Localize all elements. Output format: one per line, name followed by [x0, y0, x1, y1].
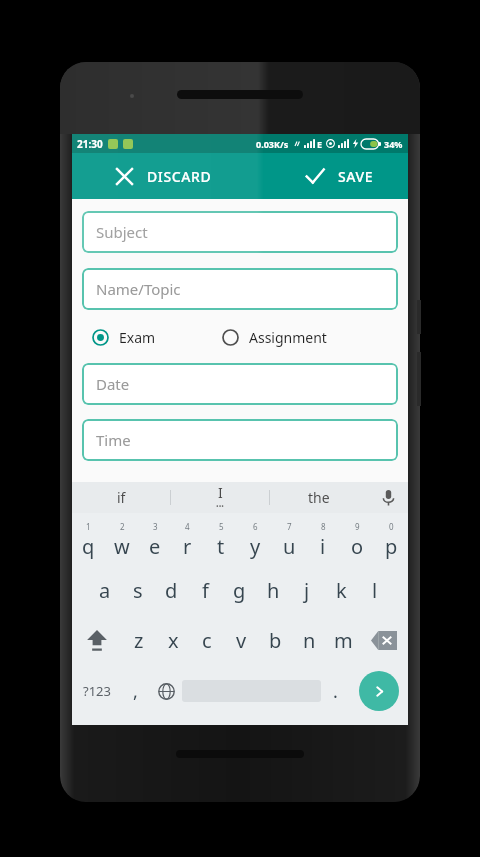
button[interactable]: Name/Topic	[82, 268, 398, 310]
staticText: y	[250, 533, 261, 560]
button[interactable]: k	[324, 565, 358, 615]
staticText: g	[233, 577, 246, 604]
staticText: r	[183, 533, 192, 560]
button[interactable]: 6	[238, 515, 272, 565]
staticText: Exam	[119, 328, 156, 347]
button[interactable]: 3	[138, 515, 171, 565]
button[interactable]: 5	[204, 515, 238, 565]
staticText: Assignment	[249, 328, 327, 347]
staticText: q	[82, 533, 95, 560]
button[interactable]: .	[321, 665, 350, 717]
button[interactable]: SAVE	[300, 159, 378, 193]
button[interactable]: the	[270, 482, 368, 513]
button[interactable]: a	[88, 565, 121, 615]
staticText: 0.03K/s	[256, 138, 289, 150]
button[interactable]: 7	[272, 515, 306, 565]
button[interactable]: Shift	[72, 615, 121, 665]
button[interactable]: g	[222, 565, 256, 615]
button[interactable]: Subject	[82, 211, 398, 253]
staticText: Subject	[96, 222, 148, 242]
button[interactable]: z	[121, 615, 156, 665]
button[interactable]: DISCARD	[110, 160, 216, 193]
staticText: .	[333, 679, 338, 704]
button[interactable]: Assignment	[220, 324, 329, 351]
button[interactable]: 0	[374, 515, 408, 565]
staticText: i	[320, 533, 326, 560]
button[interactable]: 4	[171, 515, 204, 565]
staticText: ?123	[83, 682, 111, 700]
staticText: a	[99, 577, 111, 604]
button[interactable]: j	[290, 565, 324, 615]
staticText: z	[134, 627, 144, 654]
staticText: DISCARD	[147, 167, 212, 186]
staticText: 8	[321, 521, 326, 532]
button[interactable]: I	[171, 482, 269, 513]
staticText: p	[385, 533, 398, 560]
staticText: 0	[389, 521, 394, 532]
staticText: 4	[185, 521, 190, 532]
button[interactable]: v	[224, 615, 258, 665]
staticText: Date	[96, 374, 130, 394]
staticText: the	[308, 488, 330, 507]
staticText: 2	[120, 521, 125, 532]
button[interactable]: Exam	[90, 324, 158, 351]
button[interactable]: Date	[82, 363, 398, 405]
staticText: t	[217, 533, 225, 560]
button[interactable]: 2	[105, 515, 138, 565]
staticText: E	[317, 138, 323, 150]
staticText: 7	[287, 521, 292, 532]
staticText: n	[303, 627, 316, 654]
button[interactable]: ,	[121, 665, 150, 717]
staticText: s	[133, 577, 143, 604]
button[interactable]: 8	[306, 515, 340, 565]
button[interactable]: c	[190, 615, 224, 665]
button[interactable]: if	[72, 482, 170, 513]
staticText: SAVE	[338, 167, 374, 186]
staticText: 34%	[384, 138, 403, 150]
staticText: m	[334, 627, 353, 654]
staticText: 6	[253, 521, 258, 532]
staticText: v	[236, 627, 247, 654]
staticText: o	[351, 533, 364, 560]
staticText: w	[114, 533, 130, 560]
button[interactable]: n	[292, 615, 326, 665]
button[interactable]: Change keyboard language	[150, 665, 182, 717]
staticText: 21:30	[77, 137, 103, 151]
staticText: e	[149, 533, 161, 560]
staticText: •••	[216, 502, 224, 512]
staticText: j	[304, 577, 310, 604]
button[interactable]: Next	[359, 671, 399, 711]
staticText: 5	[219, 521, 224, 532]
button[interactable]: Backspace	[360, 615, 408, 665]
staticText: f	[202, 577, 209, 604]
button[interactable]: 9	[340, 515, 374, 565]
button[interactable]	[182, 665, 321, 717]
staticText: k	[336, 577, 347, 604]
staticText: 9	[355, 521, 360, 532]
staticText: ,	[133, 679, 138, 704]
button[interactable]: Time	[82, 419, 398, 461]
button[interactable]: s	[121, 565, 154, 615]
staticText: c	[202, 627, 212, 654]
staticText: h	[267, 577, 280, 604]
button[interactable]: 1	[72, 515, 105, 565]
staticText: Name/Topic	[96, 279, 181, 299]
button[interactable]: ?123	[72, 665, 121, 717]
staticText: I	[218, 483, 223, 502]
staticText: b	[269, 627, 282, 654]
staticText: l	[372, 577, 378, 604]
staticText: 3	[153, 521, 158, 532]
button[interactable]: m	[326, 615, 360, 665]
staticText: if	[117, 488, 126, 507]
staticText: Time	[96, 430, 131, 450]
button[interactable]: h	[256, 565, 290, 615]
button[interactable]: l	[358, 565, 392, 615]
staticText: d	[165, 577, 178, 604]
button[interactable]: Voice input	[368, 482, 408, 513]
button[interactable]: b	[258, 615, 292, 665]
staticText: x	[168, 627, 179, 654]
button[interactable]: d	[154, 565, 188, 615]
staticText: 1	[86, 521, 91, 532]
button[interactable]: f	[188, 565, 222, 615]
button[interactable]: x	[156, 615, 190, 665]
